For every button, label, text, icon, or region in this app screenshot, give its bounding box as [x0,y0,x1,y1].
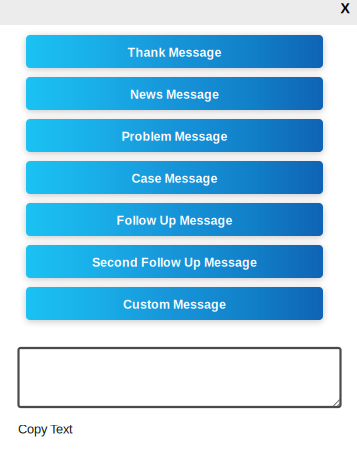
staticText: News Message [130,88,219,101]
staticText: Problem Message [121,130,227,143]
staticText: Thank Message [127,46,221,59]
staticText: Case Message [131,172,217,185]
button[interactable]: Second Follow Up Message [26,245,323,278]
button[interactable]: Problem Message [26,119,323,152]
button[interactable]: Follow Up Message [26,203,323,236]
staticText: X [340,1,349,16]
staticText: Custom Message [123,298,226,311]
button[interactable]: Thank Message [26,35,323,68]
button[interactable]: Copy Text [18,422,73,436]
button[interactable]: Case Message [26,161,323,194]
staticText: Follow Up Message [116,214,232,227]
button[interactable]: Custom Message [26,287,323,320]
button[interactable]: Close [335,0,357,25]
button[interactable]: News Message [26,77,323,110]
staticText: Copy Text [18,422,73,436]
button[interactable]: Message text [18,348,340,407]
staticText: Second Follow Up Message [92,256,257,269]
